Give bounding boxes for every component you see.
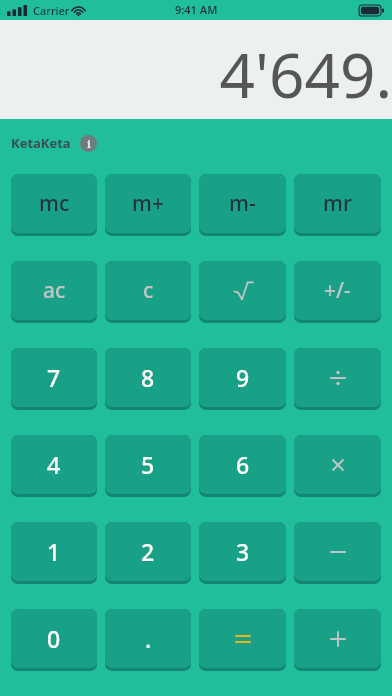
staticText: 9:41 AM <box>175 2 218 17</box>
button[interactable]: m+ <box>105 174 191 236</box>
button[interactable]: 8 <box>105 348 191 410</box>
staticText: 7 <box>47 362 61 393</box>
button[interactable]: 0 <box>11 609 97 671</box>
button[interactable]: . <box>105 609 191 671</box>
staticText: 4'649. <box>219 32 392 116</box>
button[interactable]: 5 <box>105 435 191 497</box>
staticText: i <box>87 136 91 151</box>
staticText: 8 <box>141 362 155 393</box>
button[interactable]: mr <box>294 174 381 236</box>
staticText: +/- <box>324 276 351 305</box>
staticText: 2 <box>141 536 155 567</box>
button[interactable]: 7 <box>11 348 97 410</box>
button[interactable]: 4 <box>11 435 97 497</box>
button[interactable]: Divide <box>294 348 381 410</box>
staticText: 5 <box>141 449 155 480</box>
staticText: c <box>143 276 154 305</box>
button[interactable]: Plus <box>294 609 381 671</box>
staticText: m+ <box>132 189 164 218</box>
staticText: 9 <box>236 362 250 393</box>
button[interactable]: 1 <box>11 522 97 584</box>
button[interactable]: m- <box>199 174 286 236</box>
button[interactable]: 9 <box>199 348 286 410</box>
button[interactable]: Square root <box>199 261 286 323</box>
button[interactable]: 2 <box>105 522 191 584</box>
button[interactable]: ac <box>11 261 97 323</box>
staticText: KetaKeta <box>11 134 71 152</box>
button[interactable]: Equals <box>199 609 286 671</box>
staticText: ac <box>43 276 66 305</box>
staticText: 1 <box>47 536 61 567</box>
staticText: 6 <box>236 449 250 480</box>
staticText: mc <box>39 189 70 218</box>
button[interactable]: Minus <box>294 522 381 584</box>
staticText: mr <box>323 189 352 218</box>
button[interactable]: +/- <box>294 261 381 323</box>
staticText: Carrier <box>33 3 70 18</box>
staticText: . <box>145 623 152 654</box>
button[interactable]: Multiply <box>294 435 381 497</box>
staticText: 0 <box>47 623 61 654</box>
button[interactable]: mc <box>11 174 97 236</box>
button[interactable]: Info <box>80 135 97 152</box>
button[interactable]: 3 <box>199 522 286 584</box>
staticText: m- <box>229 189 256 218</box>
staticText: 3 <box>236 536 250 567</box>
button[interactable]: 6 <box>199 435 286 497</box>
staticText: 4 <box>47 449 61 480</box>
button[interactable]: c <box>105 261 191 323</box>
